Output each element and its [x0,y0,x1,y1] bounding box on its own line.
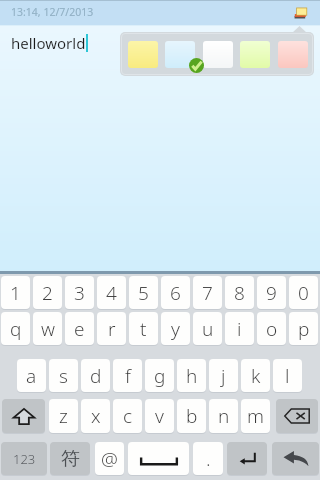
button[interactable]: b [177,399,206,433]
button[interactable]: o [257,312,286,345]
staticText: d [90,363,102,389]
button[interactable]: w [33,312,62,345]
button[interactable]: q [1,312,30,345]
button[interactable]: 0 [289,276,318,309]
button[interactable]: 8 [225,276,254,309]
button[interactable]: Back [272,442,319,475]
button[interactable]: . [193,442,223,475]
staticText: 9 [266,280,277,306]
button[interactable]: 4 [97,276,126,309]
button[interactable]: i [225,312,254,345]
button[interactable]: g [145,359,174,392]
button[interactable]: Colour 1 [128,41,158,68]
button[interactable]: @ [95,442,124,475]
button[interactable]: n [209,399,238,433]
staticText: helloworld [11,33,86,53]
staticText: 13:14, 12/7/2013 [11,5,94,19]
button[interactable]: Colour 3 [203,41,233,68]
staticText: m [247,403,264,429]
button[interactable]: z [49,399,78,433]
button[interactable]: Enter [227,442,267,475]
staticText: u [202,316,214,342]
staticText: a [26,363,37,389]
button[interactable]: Colour 2 [165,41,195,68]
staticText: n [218,403,230,429]
button[interactable]: e [65,312,94,345]
staticText: 5 [138,280,149,306]
staticText: v [155,403,164,429]
button[interactable]: h [177,359,206,392]
button[interactable]: y [161,312,190,345]
button[interactable]: l [273,359,302,392]
button[interactable]: Shift [2,399,45,433]
staticText: t [140,316,147,342]
button[interactable]: 7 [193,276,222,309]
button[interactable]: 5 [129,276,158,309]
staticText: x [91,403,101,429]
button[interactable]: 9 [257,276,286,309]
button[interactable]: Notes [294,6,308,19]
button[interactable]: 2 [33,276,62,309]
button[interactable]: 1 [1,276,30,309]
button[interactable]: t [129,312,158,345]
staticText: p [298,316,310,342]
staticText: 8 [234,280,245,306]
staticText: 3 [74,280,85,306]
staticText: 7 [202,280,213,306]
button[interactable]: x [81,399,110,433]
staticText: e [74,316,85,342]
staticText: @ [101,446,118,472]
button[interactable]: Colour 5 [278,41,308,68]
staticText: 123 [13,450,36,468]
staticText: w [41,316,55,342]
button[interactable]: v [145,399,174,433]
button[interactable]: c [113,399,142,433]
button[interactable]: 123 [1,442,47,475]
button[interactable]: 6 [161,276,190,309]
button[interactable]: u [193,312,222,345]
button[interactable]: 符 [50,442,90,475]
staticText: c [123,403,133,429]
button[interactable]: 3 [65,276,94,309]
staticText: h [186,363,198,389]
staticText: g [154,363,166,389]
staticText: j [221,363,226,389]
staticText: 2 [42,280,53,306]
staticText: r [108,316,116,342]
staticText: 0 [298,280,309,306]
button[interactable]: f [113,359,142,392]
button[interactable]: m [241,399,270,433]
button[interactable]: a [17,359,46,392]
button[interactable]: Space [128,442,189,475]
staticText: k [251,363,261,389]
button[interactable]: j [209,359,238,392]
button[interactable]: Delete [276,399,318,433]
staticText: f [125,363,131,389]
staticText: 4 [106,280,117,306]
staticText: l [285,363,290,389]
button[interactable]: p [289,312,318,345]
staticText: o [266,316,278,342]
button[interactable]: r [97,312,126,345]
button[interactable]: Colour 4 [240,41,270,68]
staticText: 符 [61,447,80,471]
staticText: b [186,403,198,429]
button[interactable]: k [241,359,270,392]
staticText: 6 [170,280,181,306]
staticText: s [59,363,68,389]
staticText: y [171,316,180,342]
staticText: . [206,446,211,472]
button[interactable]: d [81,359,110,392]
staticText: q [10,316,22,342]
staticText: i [237,316,242,342]
button[interactable]: s [49,359,78,392]
staticText: 1 [10,280,21,306]
staticText: z [59,403,68,429]
